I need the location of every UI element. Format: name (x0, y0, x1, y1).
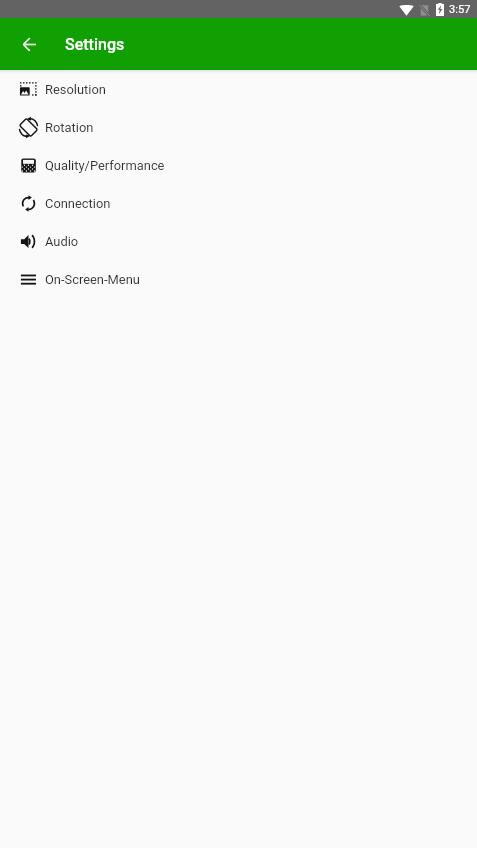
button[interactable]: Connection (0, 184, 477, 222)
button[interactable]: Resolution (0, 70, 477, 108)
staticText: On-Screen-Menu (45, 272, 140, 287)
button[interactable]: Quality/Performance (0, 146, 477, 184)
staticText: Connection (45, 196, 111, 211)
staticText: Quality/Performance (45, 158, 165, 173)
staticText: 3:57 (449, 3, 471, 16)
button[interactable]: On-Screen-Menu (0, 260, 477, 298)
button[interactable]: Rotation (0, 108, 477, 146)
button[interactable]: Navigate up (11, 26, 47, 62)
staticText: Settings (65, 35, 125, 54)
staticText: Audio (45, 234, 79, 249)
staticText: Resolution (45, 82, 106, 97)
staticText: Rotation (45, 120, 94, 135)
button[interactable]: Audio (0, 222, 477, 260)
